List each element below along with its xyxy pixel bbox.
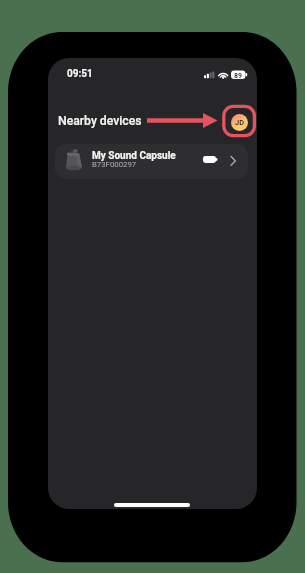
staticText: B73F000297 [92,160,137,169]
button[interactable]: My Sound Capsule [55,144,248,179]
staticText: 89 [234,72,243,80]
staticText: 09:51 [67,68,93,80]
staticText: JD [235,118,245,127]
staticText: Nearby devices [58,114,142,128]
staticText: My Sound Capsule [92,150,176,162]
button[interactable]: Account, JD [231,114,248,131]
